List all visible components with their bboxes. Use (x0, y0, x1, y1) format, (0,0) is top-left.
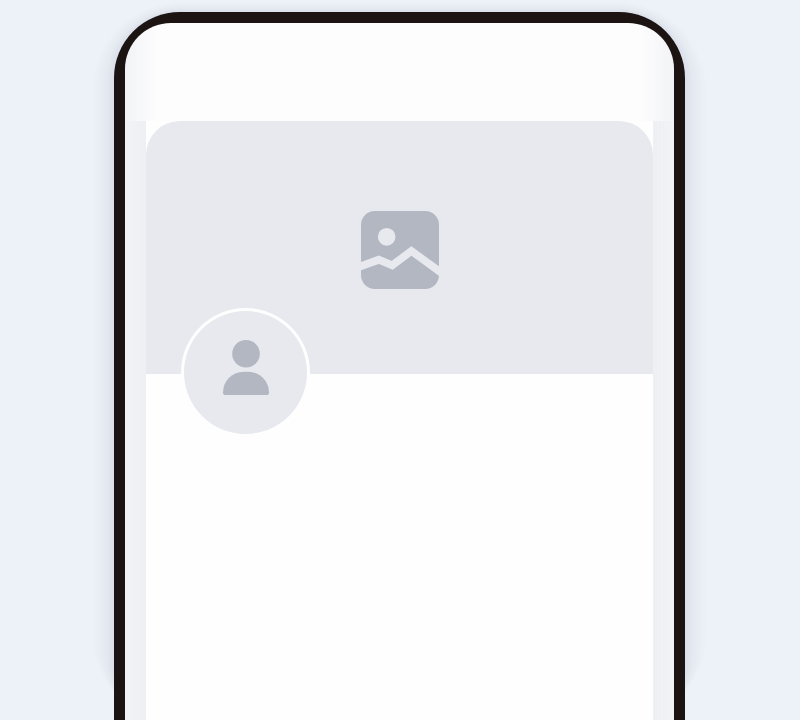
button[interactable]: Cover image placeholder (146, 121, 653, 374)
button[interactable]: Profile photo placeholder (184, 311, 307, 434)
